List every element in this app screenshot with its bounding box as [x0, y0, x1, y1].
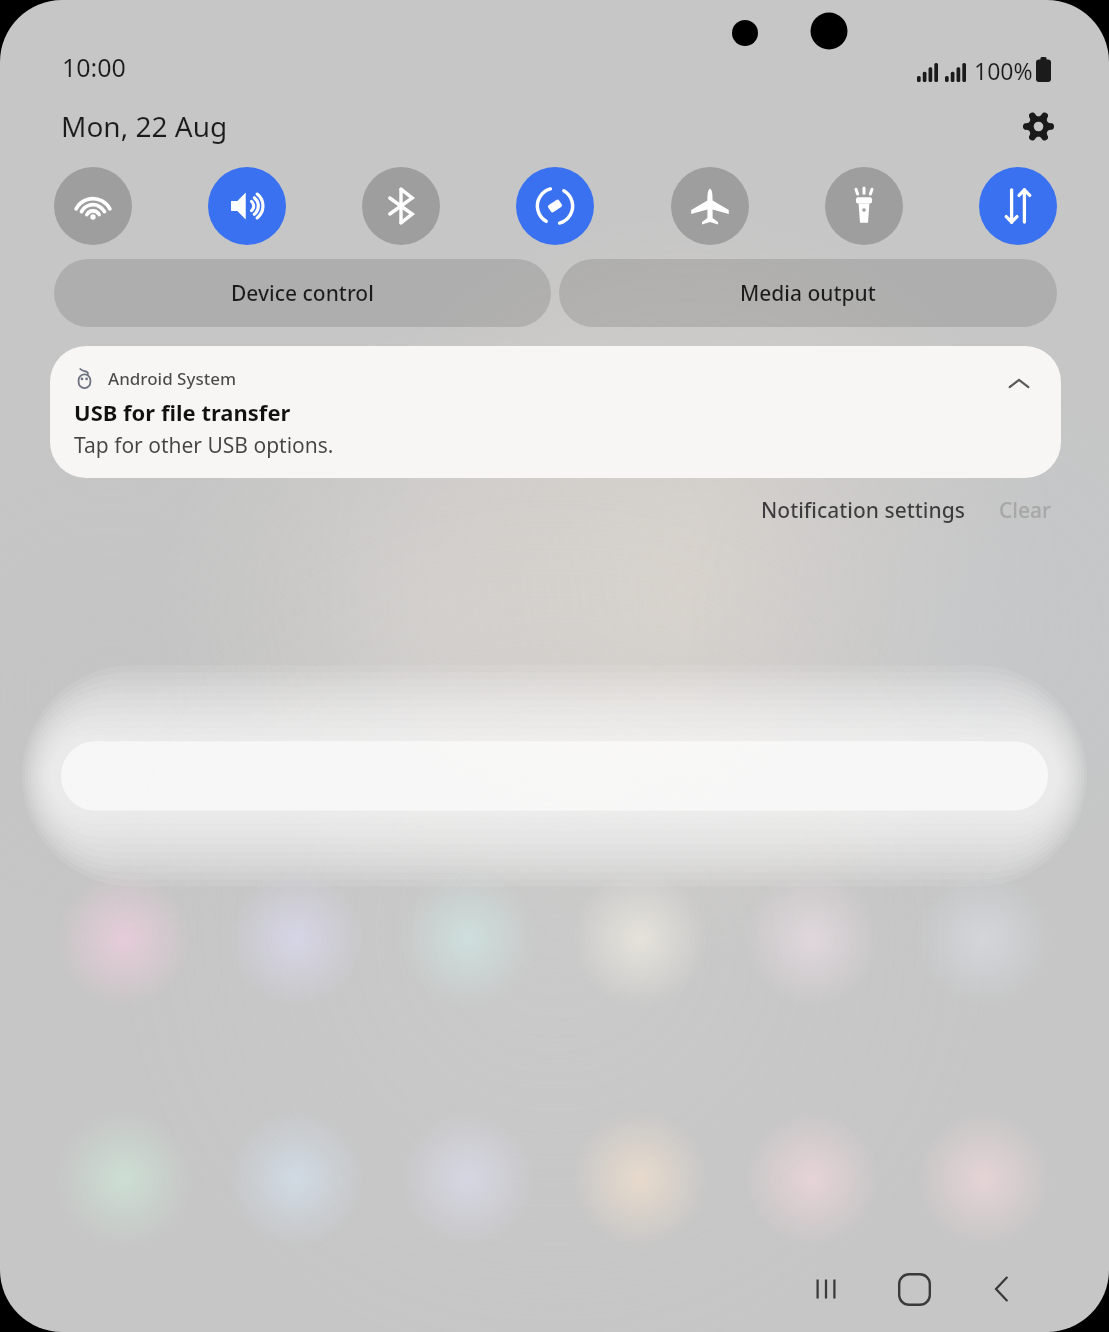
button[interactable]: Bluetooth [362, 167, 440, 245]
staticText: Notification settings [761, 496, 965, 525]
button[interactable]: Back [965, 1252, 1039, 1326]
staticText: 10:00 [62, 50, 126, 84]
button[interactable]: Mobile data [979, 167, 1057, 245]
button[interactable]: Device control [54, 259, 551, 327]
button[interactable]: Media output [559, 259, 1057, 327]
button[interactable]: Flashlight [825, 167, 903, 245]
staticText: Android System [108, 367, 237, 390]
button[interactable]: Clear [993, 490, 1057, 531]
staticText: Mon, 22 Aug [61, 107, 228, 145]
staticText: Tap for other USB options. [74, 431, 334, 460]
button[interactable]: Auto rotate [516, 167, 594, 245]
staticText: USB for file transfer [74, 397, 291, 427]
staticText: Device control [231, 279, 374, 308]
button[interactable]: Sound [208, 167, 286, 245]
button[interactable]: Android System [50, 346, 1061, 478]
button[interactable]: Home [877, 1252, 951, 1326]
button[interactable]: Airplane mode [671, 167, 749, 245]
staticText: Clear [999, 496, 1051, 525]
button[interactable]: Collapse notification [995, 360, 1043, 408]
button[interactable]: Settings [1015, 103, 1061, 149]
button[interactable]: Notification settings [755, 490, 971, 531]
staticText: Media output [740, 279, 876, 308]
button[interactable]: Wi-Fi [54, 167, 132, 245]
button[interactable]: Recents [789, 1252, 863, 1326]
staticText: 100% [974, 55, 1033, 86]
